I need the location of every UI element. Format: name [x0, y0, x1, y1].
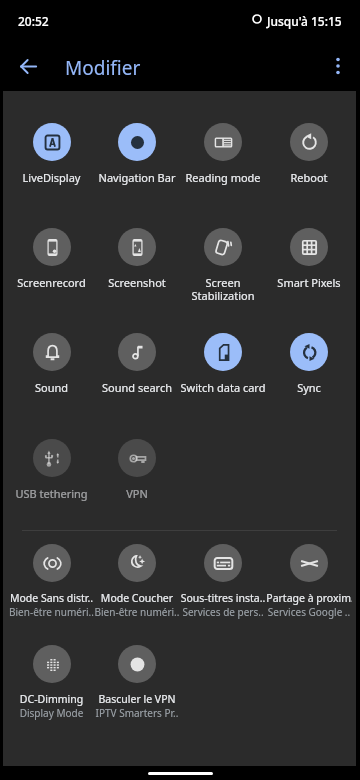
staticText: Mode Sans distr..: [9, 591, 94, 605]
staticText: Bien-être numéri..: [94, 605, 180, 619]
staticText: Reading mode: [180, 170, 266, 185]
button[interactable]: VPN: [94, 439, 180, 501]
staticText: DC-Dimming: [9, 692, 94, 706]
button[interactable]: USB tethering: [9, 439, 94, 501]
staticText: Services de pers..: [180, 605, 266, 619]
staticText: Bien-être numéri..: [9, 605, 94, 619]
staticText: Navigation Bar: [94, 170, 180, 185]
button[interactable]: More options: [318, 46, 358, 86]
staticText: Sync: [266, 380, 352, 395]
button[interactable]: Smart Pixels: [266, 228, 352, 290]
staticText: IPTV Smarters Pr..: [94, 706, 180, 720]
staticText: 20:52: [18, 13, 49, 29]
staticText: Switch data card: [180, 380, 266, 395]
button[interactable]: LiveDisplay: [9, 123, 94, 185]
button[interactable]: Switch data card: [180, 333, 266, 395]
button[interactable]: Mode Sans distr..: [9, 544, 94, 619]
staticText: Modifier: [65, 55, 141, 81]
button[interactable]: Screenshot: [94, 228, 180, 290]
staticText: Screenrecord: [9, 275, 94, 290]
button[interactable]: Navigation Bar: [94, 123, 180, 185]
button[interactable]: Sound: [9, 333, 94, 395]
staticText: Screen Stabilization: [180, 275, 266, 303]
button[interactable]: Reboot: [266, 123, 352, 185]
staticText: Display Mode: [9, 706, 94, 720]
button[interactable]: Sous-titres insta..: [180, 544, 266, 619]
button[interactable]: DC-Dimming: [9, 645, 94, 720]
staticText: Sous-titres insta..: [180, 591, 266, 605]
button[interactable]: Partage à proxim..: [266, 544, 352, 619]
staticText: Sound: [9, 380, 94, 395]
staticText: Sound search: [94, 380, 180, 395]
staticText: Screenshot: [94, 275, 180, 290]
button[interactable]: Sound search: [94, 333, 180, 395]
button[interactable]: Screen Stabilization: [180, 228, 266, 303]
button[interactable]: Reading mode: [180, 123, 266, 185]
staticText: Services Google ..: [266, 605, 352, 619]
staticText: Mode Coucher: [94, 591, 180, 605]
staticText: Reboot: [266, 170, 352, 185]
staticText: Smart Pixels: [266, 275, 352, 290]
staticText: VPN: [94, 486, 180, 501]
staticText: Jusqu'à 15:15: [267, 13, 342, 29]
staticText: Basculer le VPN: [94, 692, 180, 706]
button[interactable]: Basculer le VPN: [94, 645, 180, 720]
staticText: LiveDisplay: [9, 170, 94, 185]
staticText: Partage à proxim..: [266, 591, 352, 605]
button[interactable]: Screenrecord: [9, 228, 94, 290]
button[interactable]: Mode Coucher: [94, 544, 180, 619]
button[interactable]: Back: [8, 46, 48, 86]
staticText: USB tethering: [9, 486, 94, 501]
button[interactable]: Sync: [266, 333, 352, 395]
